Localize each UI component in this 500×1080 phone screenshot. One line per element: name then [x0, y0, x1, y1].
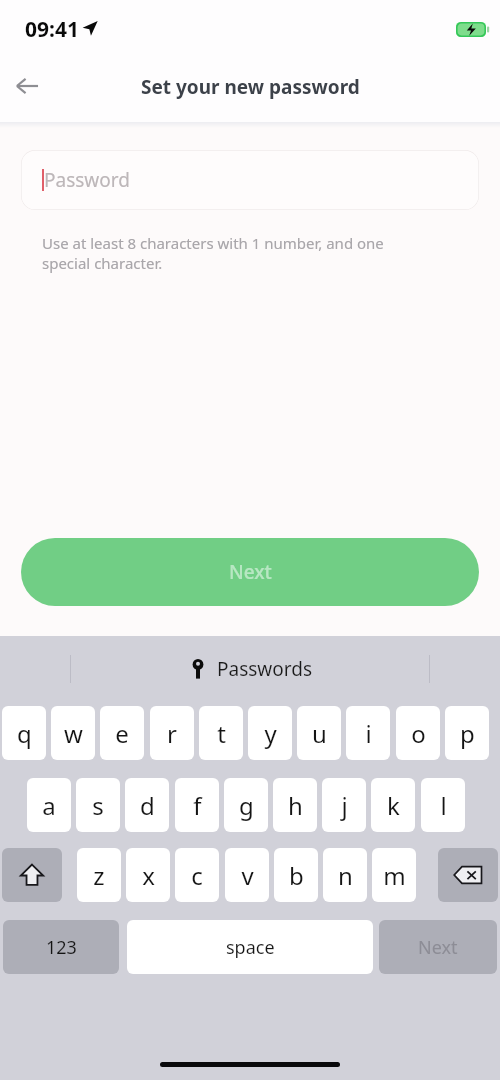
- staticText: b: [289, 859, 304, 892]
- button[interactable]: j: [322, 778, 366, 832]
- button[interactable]: space: [127, 920, 373, 974]
- staticText: c: [191, 859, 203, 892]
- button[interactable]: y: [248, 706, 292, 760]
- button[interactable]: h: [273, 778, 317, 832]
- button[interactable]: s: [76, 778, 120, 832]
- staticText: q: [17, 717, 32, 750]
- staticText: 09:41: [25, 15, 79, 44]
- staticText: Use at least 8 characters with 1 number,…: [42, 233, 384, 253]
- button[interactable]: Password: [21, 150, 479, 210]
- staticText: special character.: [42, 253, 163, 273]
- staticText: z: [93, 859, 105, 892]
- button[interactable]: w: [51, 706, 95, 760]
- button[interactable]: x: [126, 848, 170, 902]
- button[interactable]: k: [371, 778, 415, 832]
- button[interactable]: l: [421, 778, 465, 832]
- staticText: Set your new password: [141, 74, 360, 100]
- staticText: Password: [44, 167, 130, 193]
- button[interactable]: t: [199, 706, 243, 760]
- button[interactable]: u: [297, 706, 341, 760]
- button[interactable]: c: [175, 848, 219, 902]
- staticText: k: [387, 789, 400, 822]
- staticText: m: [383, 859, 406, 892]
- staticText: v: [241, 859, 254, 892]
- staticText: j: [341, 789, 348, 822]
- button[interactable]: Backspace: [438, 848, 498, 902]
- staticText: d: [140, 789, 155, 822]
- button[interactable]: Next: [21, 538, 479, 606]
- button[interactable]: e: [100, 706, 144, 760]
- button[interactable]: m: [372, 848, 416, 902]
- staticText: g: [239, 789, 254, 822]
- staticText: 123: [46, 935, 77, 960]
- staticText: s: [92, 789, 104, 822]
- staticText: p: [460, 717, 475, 750]
- button[interactable]: Next: [379, 920, 497, 974]
- button[interactable]: z: [77, 848, 121, 902]
- button[interactable]: g: [224, 778, 268, 832]
- button[interactable]: p: [445, 706, 489, 760]
- staticText: space: [226, 935, 275, 960]
- staticText: a: [42, 789, 56, 822]
- staticText: Next: [418, 935, 458, 960]
- button[interactable]: q: [2, 706, 46, 760]
- button[interactable]: b: [274, 848, 318, 902]
- staticText: Passwords: [217, 656, 313, 682]
- staticText: f: [193, 789, 202, 822]
- button[interactable]: f: [175, 778, 219, 832]
- button[interactable]: Back: [6, 65, 48, 107]
- button[interactable]: a: [27, 778, 71, 832]
- staticText: o: [411, 717, 426, 750]
- button[interactable]: Shift: [2, 848, 62, 902]
- button[interactable]: 123: [3, 920, 119, 974]
- staticText: Next: [229, 559, 272, 585]
- button[interactable]: i: [346, 706, 390, 760]
- button[interactable]: Passwords: [188, 656, 313, 682]
- staticText: h: [288, 789, 303, 822]
- staticText: r: [167, 717, 177, 750]
- button[interactable]: d: [125, 778, 169, 832]
- staticText: n: [338, 859, 353, 892]
- staticText: i: [365, 717, 372, 750]
- staticText: t: [217, 717, 226, 750]
- staticText: e: [115, 717, 129, 750]
- button[interactable]: o: [396, 706, 440, 760]
- staticText: l: [440, 789, 447, 822]
- staticText: x: [142, 859, 155, 892]
- staticText: u: [312, 717, 327, 750]
- staticText: y: [264, 717, 277, 750]
- button[interactable]: v: [225, 848, 269, 902]
- button[interactable]: n: [323, 848, 367, 902]
- staticText: w: [64, 717, 83, 750]
- button[interactable]: r: [150, 706, 194, 760]
